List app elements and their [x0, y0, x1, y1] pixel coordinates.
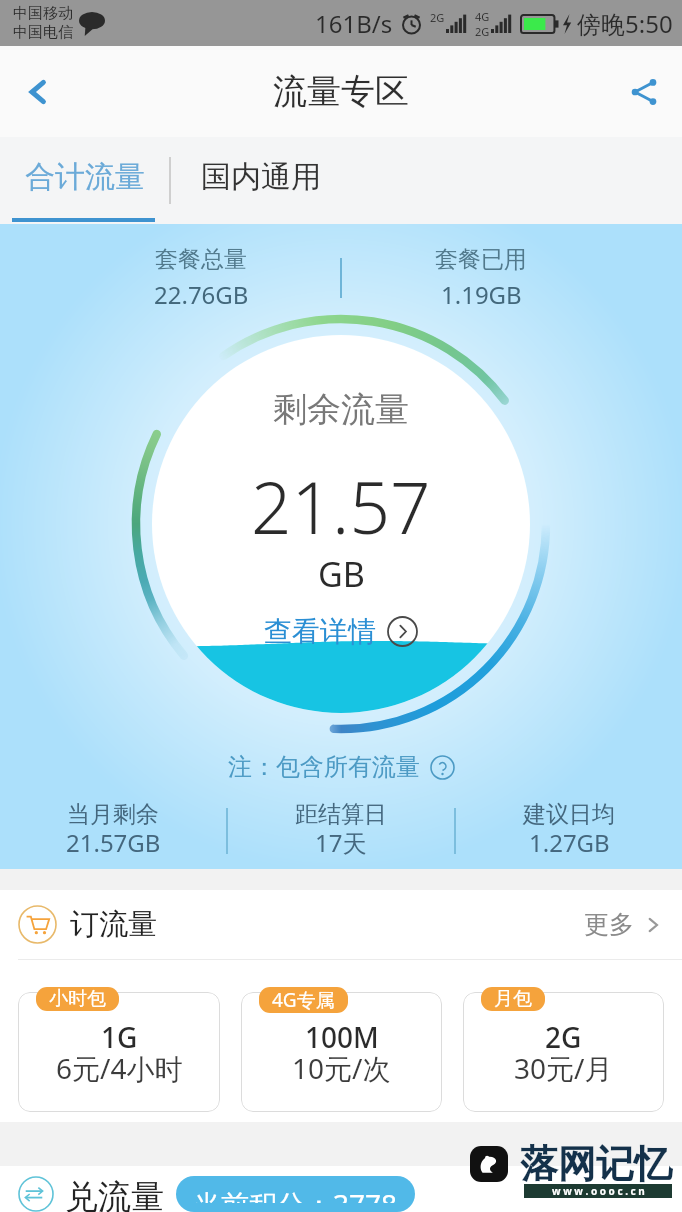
staticText: 月包 [494, 987, 532, 1011]
staticText: 更多 [584, 909, 634, 940]
staticText: 套餐已用 [435, 245, 527, 274]
button[interactable]: 查看详情 [264, 614, 418, 649]
staticText: 6元/4小时 [56, 1049, 183, 1087]
staticText: 2G [545, 1018, 582, 1056]
button[interactable]: 100M [241, 992, 442, 1112]
staticText: 剩余流量 [273, 388, 409, 431]
staticText: 4G [475, 9, 490, 24]
button[interactable]: 2G [463, 992, 664, 1112]
staticText: 2G [430, 10, 445, 25]
button[interactable]: Back [10, 64, 66, 120]
staticText: 100M [305, 1018, 379, 1056]
staticText: 兑流量 [65, 1176, 164, 1212]
button[interactable]: Share [616, 64, 672, 120]
staticText: 流量专区 [273, 70, 409, 113]
staticText: 1.27GB [529, 826, 610, 859]
button[interactable]: 距结算日 [228, 800, 454, 862]
button[interactable]: 当月剩余 [0, 800, 226, 862]
button[interactable]: 兑流量 [16, 1176, 664, 1212]
staticText: 21.57GB [66, 826, 161, 859]
staticText: 30元/月 [514, 1049, 613, 1087]
staticText: 距结算日 [295, 800, 387, 829]
button[interactable]: 当前积分：3778 [193, 1185, 398, 1203]
button[interactable]: 国内通用 [171, 137, 351, 224]
button[interactable]: 订流量 [18, 890, 664, 959]
staticText: 小时包 [49, 987, 106, 1011]
staticText: 注：包含所有流量 [228, 752, 420, 782]
staticText: 建议日均 [523, 800, 615, 829]
staticText: 17天 [315, 826, 367, 859]
staticText: 1G [101, 1018, 138, 1056]
staticText: 合计流量 [25, 158, 145, 196]
staticText: 22.76GB [154, 278, 249, 311]
staticText: 4G专属 [272, 987, 335, 1013]
button[interactable]: 建议日均 [456, 800, 682, 862]
staticText: 查看详情 [264, 614, 376, 649]
staticText: 套餐总量 [155, 245, 247, 274]
staticText: 10元/次 [292, 1049, 391, 1087]
staticText: GB [318, 551, 365, 597]
staticText: 21.57 [251, 458, 431, 555]
staticText: 傍晚5:50 [577, 7, 673, 40]
button[interactable]: 合计流量 [0, 137, 169, 224]
staticText: 国内通用 [201, 158, 321, 196]
button[interactable]: 注：包含所有流量 [228, 752, 455, 782]
staticText: 订流量 [70, 906, 157, 943]
staticText: 当前积分：3778 [193, 1185, 398, 1203]
button[interactable]: 1G [18, 992, 220, 1112]
staticText: 中国移动 [13, 4, 73, 23]
staticText: 落网记忆 [520, 1140, 672, 1188]
staticText: 当月剩余 [67, 800, 159, 829]
staticText: 1.19GB [441, 278, 522, 311]
staticText: 161B/s [315, 7, 393, 40]
staticText: w w w . o o o c . c n [552, 1184, 645, 1198]
staticText: 2G [475, 24, 490, 39]
staticText: 中国电信 [13, 23, 73, 42]
